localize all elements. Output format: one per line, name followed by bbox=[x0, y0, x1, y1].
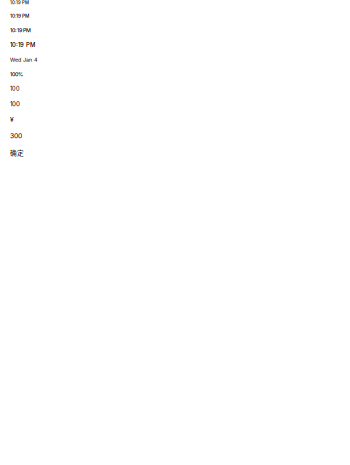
staticText: 100 bbox=[10, 100, 20, 108]
staticText: 10:19 PM bbox=[10, 0, 29, 5]
staticText: 10:19 PM bbox=[10, 13, 29, 19]
staticText: 300 bbox=[10, 132, 22, 140]
staticText: 确定 bbox=[10, 148, 24, 157]
staticText: 100 bbox=[10, 85, 20, 92]
staticText: Wed Jan 4 bbox=[10, 56, 37, 63]
staticText: 10:19 PM bbox=[10, 27, 31, 33]
staticText: 10:19 PM bbox=[10, 41, 35, 48]
staticText: 100% bbox=[10, 71, 23, 77]
staticText: ¥ bbox=[10, 116, 14, 124]
